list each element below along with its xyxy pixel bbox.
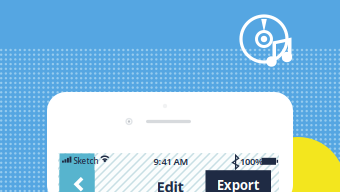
staticText: Edit [157,177,184,192]
button[interactable]: Export [205,170,271,192]
staticText: Export [217,176,260,192]
button[interactable]: Back [59,170,94,192]
staticText: 100% [240,155,263,167]
staticText: 9:41 AM [153,155,188,167]
staticText: Sketch [74,156,99,166]
